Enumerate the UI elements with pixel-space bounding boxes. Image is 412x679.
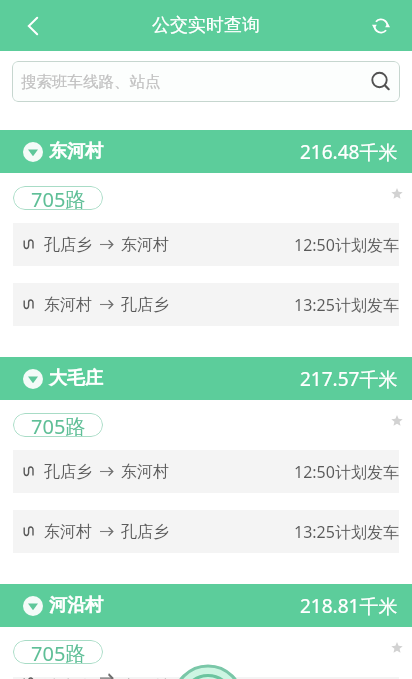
staticText: 大毛庄: [49, 367, 103, 390]
staticText: 705路: [31, 186, 86, 210]
button[interactable]: Favorite: [391, 642, 403, 654]
staticText: 东河村: [121, 462, 169, 482]
button[interactable]: 705路: [13, 640, 103, 664]
staticText: 孔店乡: [44, 235, 92, 255]
button[interactable]: 河沿村: [0, 584, 412, 627]
staticText: 216.48千米: [300, 139, 398, 165]
button[interactable]: 孔店乡: [13, 677, 399, 679]
button[interactable]: Favorite: [391, 415, 403, 427]
button[interactable]: 东河村: [13, 510, 399, 553]
staticText: 公交实时查询: [152, 14, 260, 37]
button[interactable]: Back: [14, 7, 52, 45]
staticText: 705路: [31, 640, 86, 664]
staticText: 217.57千米: [300, 366, 398, 392]
staticText: 东河村: [44, 522, 92, 542]
staticText: 13:25计划发车: [294, 294, 399, 316]
button[interactable]: 东河村: [0, 130, 412, 173]
button[interactable]: Favorite: [391, 188, 403, 200]
button[interactable]: 705路: [13, 186, 103, 210]
staticText: 河沿村: [49, 594, 103, 617]
staticText: 705路: [31, 413, 86, 437]
button[interactable]: 705路: [13, 413, 103, 437]
button[interactable]: Refresh list: [168, 660, 248, 679]
staticText: 13:25计划发车: [294, 521, 399, 543]
staticText: 东河村: [121, 677, 169, 679]
staticText: 218.81千米: [300, 593, 398, 619]
staticText: 孔店乡: [44, 462, 92, 482]
staticText: 孔店乡: [44, 677, 92, 679]
staticText: 搜索班车线路、站点: [21, 72, 161, 92]
staticText: 孔店乡: [121, 522, 169, 542]
button[interactable]: 孔店乡: [13, 223, 399, 266]
button[interactable]: 东河村: [13, 283, 399, 326]
staticText: 东河村: [121, 235, 169, 255]
button[interactable]: 搜索班车线路、站点: [12, 61, 400, 102]
staticText: 孔店乡: [121, 295, 169, 315]
staticText: 东河村: [44, 295, 92, 315]
button[interactable]: 孔店乡: [13, 450, 399, 493]
staticText: 12:50计划发车: [294, 461, 399, 483]
staticText: 12:50计划发车: [294, 234, 399, 256]
button[interactable]: 大毛庄: [0, 357, 412, 400]
staticText: 东河村: [49, 140, 103, 163]
button[interactable]: Refresh: [364, 9, 398, 43]
